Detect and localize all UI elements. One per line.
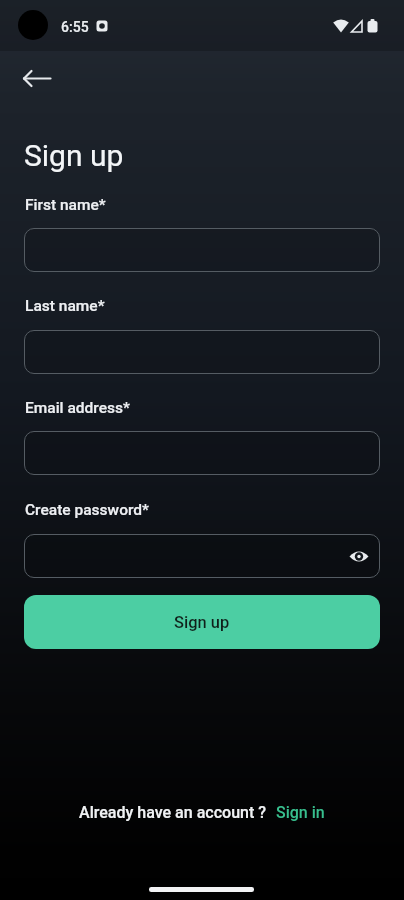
button[interactable]: Sign in <box>276 803 325 822</box>
button[interactable] <box>24 228 380 272</box>
button[interactable] <box>24 534 380 578</box>
staticText: Sign up <box>24 138 124 173</box>
staticText: Already have an account ? <box>79 803 267 822</box>
staticText: Create password* <box>25 501 149 519</box>
button[interactable] <box>24 330 380 374</box>
button[interactable] <box>24 431 380 475</box>
staticText: First name* <box>25 196 106 214</box>
staticText: Sign up <box>174 613 230 632</box>
staticText: Last name* <box>25 297 105 315</box>
staticText: 6:55 <box>61 19 89 35</box>
button[interactable]: Sign up <box>24 595 380 649</box>
button[interactable] <box>12 62 58 96</box>
button[interactable] <box>337 535 380 578</box>
staticText: Email address* <box>25 399 130 417</box>
